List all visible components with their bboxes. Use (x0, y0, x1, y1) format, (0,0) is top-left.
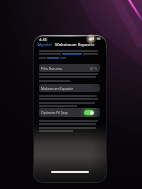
staticText: Maksimum Kapasite (55, 42, 95, 47)
button[interactable]: Maksimum Kapasite (39, 84, 100, 92)
staticText: Pilin Durumu (41, 66, 62, 71)
button[interactable]: Pilin Durumu (39, 64, 100, 72)
staticText: 87 % (90, 67, 98, 71)
button[interactable]: Ayarlar (36, 42, 54, 47)
staticText: 4:46 (39, 37, 47, 42)
button[interactable]: Optimize Pil Şarjı (39, 108, 100, 117)
staticText: Optimize Pil Şarjı (41, 110, 68, 115)
staticText: Maksimum Kapasite (41, 86, 74, 91)
staticText: Ayarlar (39, 42, 53, 47)
button[interactable]: Optimize Pil Şarjı açık (84, 110, 94, 115)
